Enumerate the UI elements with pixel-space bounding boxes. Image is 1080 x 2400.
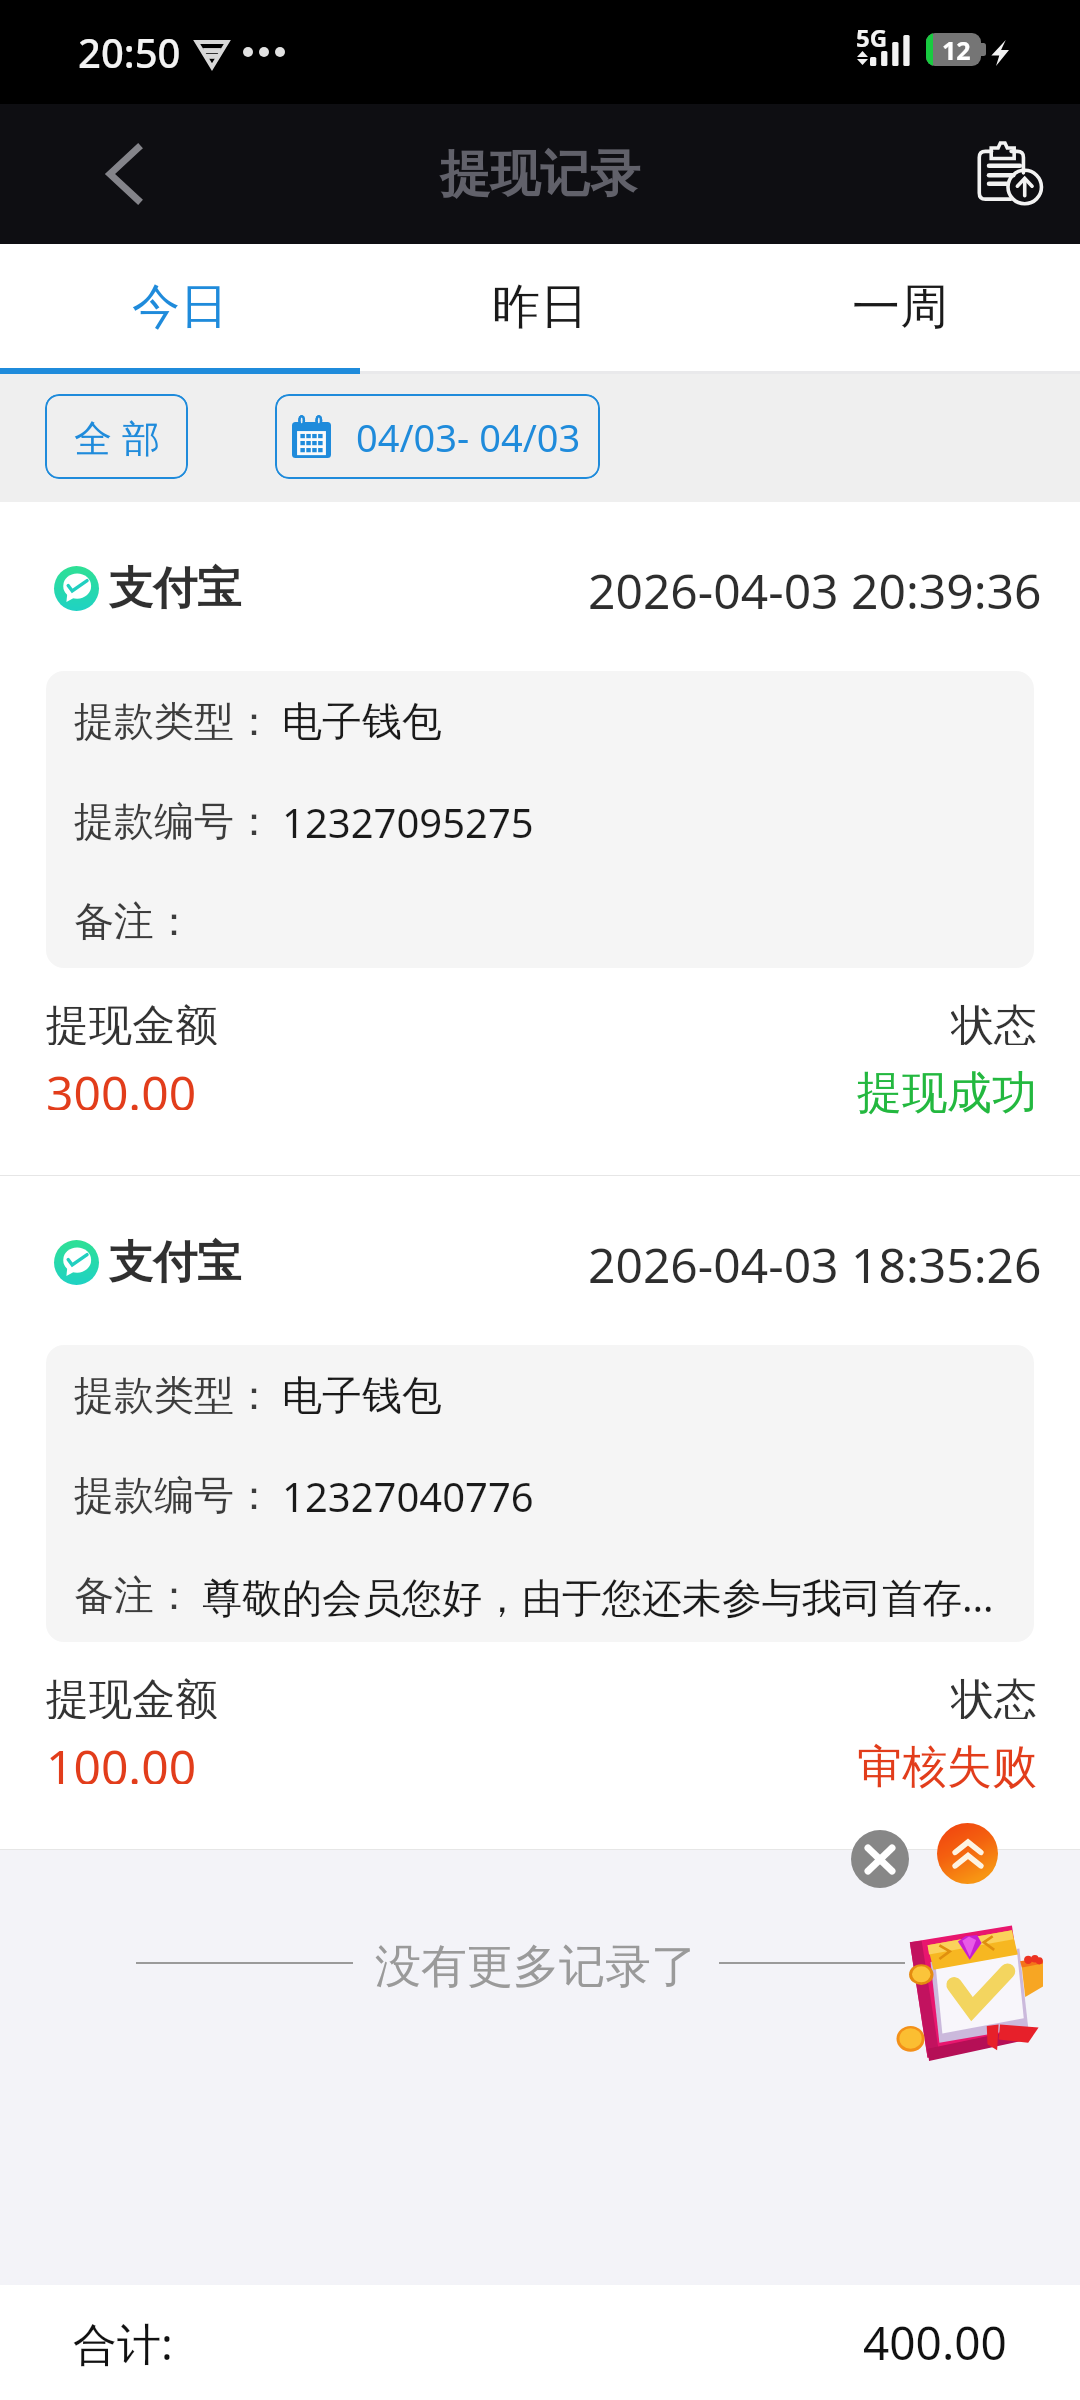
button[interactable]: 支付宝 — [0, 1176, 1080, 1849]
button[interactable]: Back — [64, 104, 184, 244]
staticText: 12327040776 — [282, 1469, 534, 1521]
staticText: 100.00 — [46, 1734, 197, 1784]
staticText: 提款类型： — [74, 1370, 274, 1420]
staticText: 300.00 — [46, 1060, 197, 1110]
staticText: 审核失败 — [857, 1739, 1037, 1789]
staticText: 提款编号： — [74, 1470, 274, 1520]
button[interactable]: Scroll to top — [937, 1823, 998, 1884]
staticText: 支付宝 — [109, 1235, 241, 1290]
staticText: 提现成功 — [857, 1065, 1037, 1115]
staticText: 12327095275 — [282, 795, 534, 847]
staticText: 提现记录 — [440, 143, 640, 206]
staticText: 提现金额 — [46, 1673, 218, 1719]
button[interactable]: Close — [851, 1830, 909, 1888]
button[interactable]: 支付宝 — [0, 502, 1080, 1175]
staticText: 20:50 — [78, 25, 181, 79]
staticText: 04/03- 04/03 — [356, 411, 581, 463]
staticText: 备注： — [74, 1570, 194, 1620]
staticText: 没有更多记录了 — [375, 1938, 697, 1988]
staticText: 电子钱包 — [282, 1370, 442, 1420]
staticText: 状态 — [951, 999, 1037, 1045]
staticText: 提现金额 — [46, 999, 218, 1045]
staticText: 一周 — [852, 277, 948, 337]
staticText: 昨日 — [492, 277, 588, 337]
staticText: 2026-04-03 20:39:36 — [588, 558, 1042, 618]
staticText: 合计: — [73, 2313, 173, 2373]
staticText: 2026-04-03 18:35:26 — [588, 1232, 1042, 1292]
staticText: 提款编号： — [74, 796, 274, 846]
button[interactable]: Export records — [952, 104, 1068, 244]
staticText: 支付宝 — [109, 561, 241, 616]
button[interactable]: 昨日 — [360, 244, 720, 374]
staticText: 状态 — [951, 1673, 1037, 1719]
staticText: 备注： — [74, 896, 194, 946]
button[interactable]: 04/03- 04/03 — [275, 394, 600, 479]
staticText: 12 — [942, 33, 971, 66]
button[interactable]: 全 部 — [45, 394, 188, 479]
button[interactable]: 今日 — [0, 244, 360, 374]
staticText: 电子钱包 — [282, 696, 442, 746]
staticText: 400.00 — [863, 2311, 1007, 2374]
button[interactable]: 一周 — [720, 244, 1080, 374]
staticText: 尊敬的会员您好，由于您还未参与我司首存… — [202, 1569, 994, 1621]
staticText: 全 部 — [74, 411, 160, 463]
staticText: 今日 — [132, 277, 228, 337]
staticText: 提款类型： — [74, 696, 274, 746]
staticText: 5G — [856, 21, 888, 54]
